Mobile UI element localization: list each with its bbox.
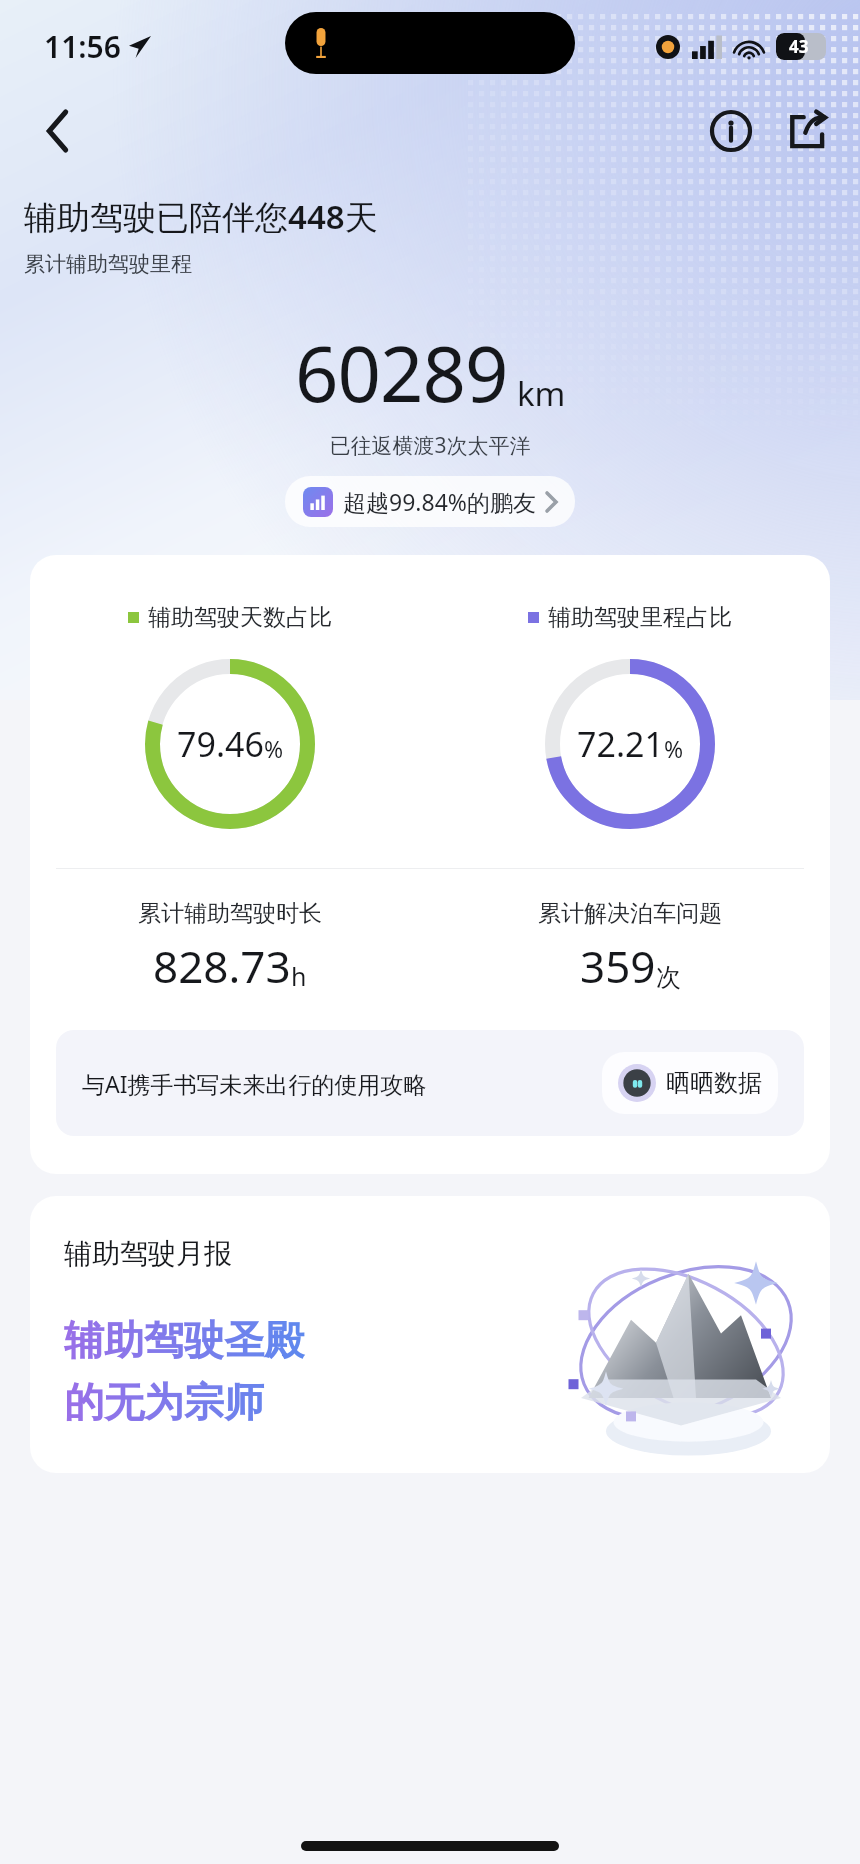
staticText: 11:56 [44,26,121,67]
button[interactable]: Info [702,102,760,160]
staticText: % [264,733,284,764]
staticText: % [664,733,684,764]
button[interactable]: 晒晒数据 [602,1052,778,1114]
staticText: 累计辅助驾驶里程 [24,251,192,277]
button[interactable]: 辅助驾驶月报 [30,1196,830,1473]
staticText: 超越99.84%的鹏友 [343,486,536,517]
staticText: 359 [580,936,656,996]
button[interactable]: 超越99.84%的鹏友 [285,476,575,527]
staticText: 辅助驾驶里程占比 [548,603,732,632]
staticText: 828.73 [153,936,291,996]
staticText: 辅助驾驶月报 [64,1236,232,1271]
staticText: 43 [789,35,809,58]
staticText: 已往返横渡3次太平洋 [0,431,860,460]
staticText: km [517,371,566,416]
staticText: 辅助驾驶已陪伴您448天 [24,194,378,239]
staticText: 累计辅助驾驶时长 [138,899,322,928]
button[interactable]: Share [778,102,836,160]
staticText: 72.21 [577,721,664,767]
button[interactable]: Back [30,103,86,159]
staticText: 与AI携手书写未来出行的使用攻略 [82,1068,588,1099]
staticText: 累计解决泊车问题 [538,899,722,928]
staticText: 辅助驾驶天数占比 [148,603,332,632]
staticText: 60289 [295,321,508,425]
staticText: h [291,959,307,993]
staticText: 79.46 [177,721,264,767]
staticText: 次 [656,962,681,993]
staticText: 辅助驾驶圣殿 [64,1315,304,1365]
staticText: 晒晒数据 [666,1068,762,1098]
staticText: 的无为宗师 [64,1377,264,1427]
